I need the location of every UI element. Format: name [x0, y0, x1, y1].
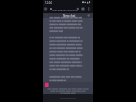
- button[interactable]: Menu: [43, 13, 50, 18]
- button[interactable]: New conversation: [88, 13, 93, 18]
- button[interactable]: chat.openai.com/chat: [52, 5, 81, 13]
- button[interactable]: More options: [89, 5, 93, 13]
- staticText: New chat: [63, 14, 76, 18]
- staticText: chat.openai.com/chat: [52, 8, 78, 11]
- button[interactable]: Account: [43, 5, 52, 13]
- button[interactable]: Account: [43, 5, 93, 13]
- button[interactable]: Tabs: [85, 5, 89, 13]
- button[interactable]: Refresh: [81, 5, 85, 13]
- staticText: 12:04: [45, 1, 52, 5]
- staticText: ● ▪ ▲ ▮: [82, 1, 91, 4]
- button[interactable]: New chat: [50, 13, 88, 18]
